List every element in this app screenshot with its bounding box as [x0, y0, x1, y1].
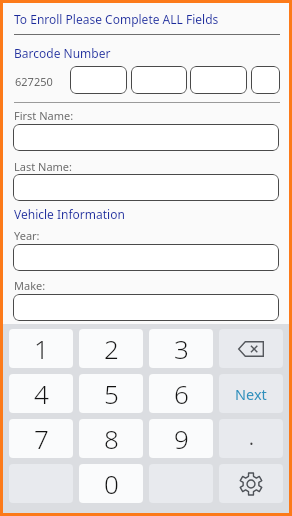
staticText: Last Name: — [14, 159, 73, 174]
staticText: 5 — [104, 376, 119, 411]
staticText: 9 — [174, 421, 189, 456]
button[interactable]: 4 — [9, 374, 73, 413]
button[interactable] — [251, 66, 280, 94]
staticText: 2 — [104, 331, 119, 366]
button[interactable]: 3 — [149, 329, 213, 368]
staticText: 6 — [174, 376, 189, 411]
button[interactable] — [190, 66, 247, 94]
staticText: To Enroll Please Complete ALL Fields — [14, 11, 219, 27]
button[interactable]: 5 — [79, 374, 143, 413]
staticText: 627250 — [15, 74, 53, 89]
button[interactable]: Settings — [219, 464, 283, 503]
button[interactable] — [131, 66, 187, 94]
button[interactable]: Next — [219, 374, 283, 413]
staticText: Vehicle Information — [14, 206, 125, 222]
button[interactable]: 0 — [79, 464, 143, 503]
button[interactable] — [70, 66, 127, 94]
staticText: 0 — [104, 466, 119, 501]
staticText: Next — [235, 384, 267, 404]
staticText: 3 — [174, 331, 189, 366]
staticText: Make: — [14, 278, 46, 293]
button[interactable] — [13, 174, 279, 201]
staticText: . — [249, 426, 254, 451]
button[interactable]: 7 — [9, 419, 73, 458]
staticText: 4 — [34, 376, 49, 411]
button[interactable]: 9 — [149, 419, 213, 458]
button[interactable]: 8 — [79, 419, 143, 458]
staticText: 1 — [34, 331, 49, 366]
button[interactable]: . — [219, 419, 283, 458]
staticText: 7 — [34, 421, 49, 456]
button[interactable] — [13, 244, 279, 271]
staticText: 8 — [104, 421, 119, 456]
button[interactable] — [13, 294, 279, 321]
button[interactable] — [13, 124, 279, 151]
staticText: First Name: — [14, 108, 74, 123]
button[interactable]: 1 — [9, 329, 73, 368]
button[interactable]: Backspace — [219, 329, 283, 368]
button[interactable]: 6 — [149, 374, 213, 413]
button[interactable]: 2 — [79, 329, 143, 368]
staticText: Barcode Number — [14, 45, 111, 61]
staticText: Year: — [14, 228, 40, 243]
